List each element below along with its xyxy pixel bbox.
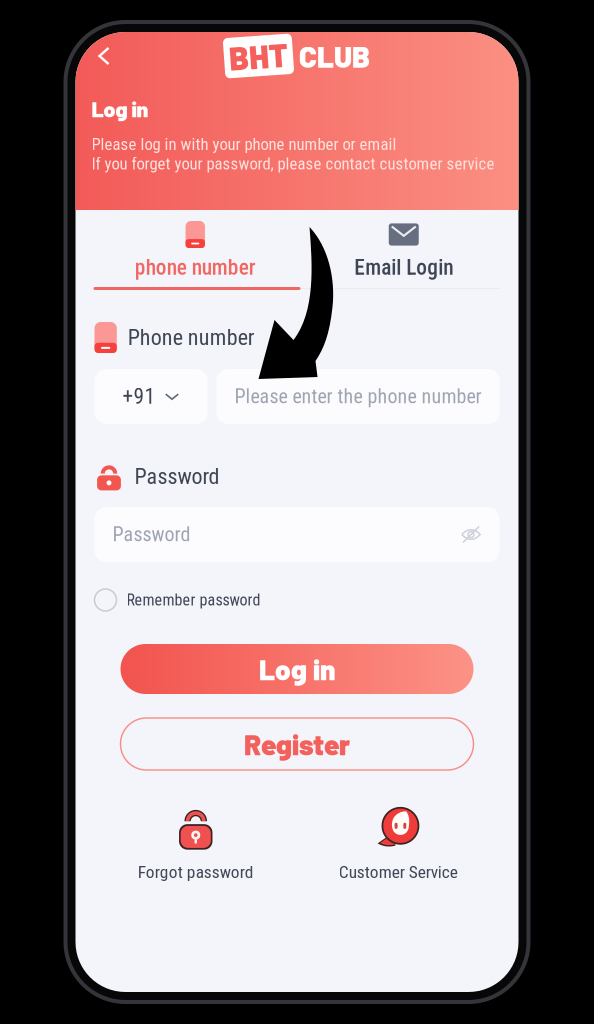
staticText: Log in <box>259 652 335 686</box>
button[interactable]: Log in <box>120 644 473 694</box>
staticText: Forgot password <box>138 862 254 882</box>
staticText: phone number <box>135 255 256 280</box>
staticText: CLUB <box>299 38 370 74</box>
button[interactable]: Register <box>120 718 473 770</box>
staticText: Please log in with your phone number or … <box>91 135 396 154</box>
button[interactable]: Forgot password <box>94 806 297 882</box>
button[interactable]: Back <box>91 39 116 73</box>
staticText: Register <box>244 727 350 761</box>
button[interactable]: +91 <box>94 369 207 424</box>
button[interactable]: Remember password <box>94 589 499 611</box>
button[interactable]: Customer Service <box>297 806 499 882</box>
staticText: Remember password <box>126 591 260 609</box>
button[interactable]: Please enter the phone number <box>216 369 499 424</box>
button[interactable]: Email Login <box>297 210 500 287</box>
staticText: Log in <box>91 96 148 122</box>
button[interactable]: phone number <box>93 210 297 287</box>
button[interactable]: Password <box>94 507 499 562</box>
staticText: Customer Service <box>339 862 458 882</box>
staticText: Please enter the phone number <box>234 385 481 408</box>
staticText: Password <box>134 464 219 489</box>
staticText: Phone number <box>128 325 255 350</box>
staticText: BHT <box>229 37 288 75</box>
staticText: Password <box>112 523 190 546</box>
staticText: +91 <box>122 384 155 409</box>
staticText: Email Login <box>354 255 453 280</box>
staticText: If you forget your password, please cont… <box>91 154 494 174</box>
